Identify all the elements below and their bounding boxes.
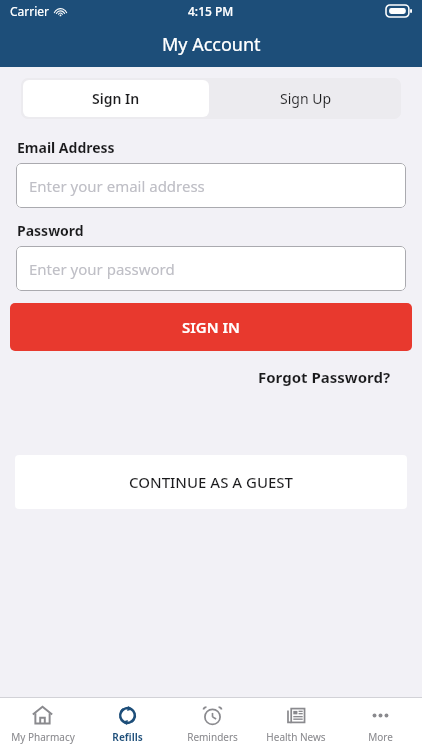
button[interactable]: CONTINUE AS A GUEST [15,455,407,509]
staticText: CONTINUE AS A GUEST [129,472,294,492]
button[interactable]: Enter your password [16,246,406,291]
staticText: 4:15 PM [188,3,234,19]
staticText: My Account [162,32,261,57]
button[interactable]: Forgot Password? [258,367,391,387]
button[interactable]: Sign In [23,80,209,117]
staticText: Enter your password [29,259,175,279]
staticText: More [368,730,393,744]
button[interactable]: Sign Up [211,78,401,119]
staticText: Health News [266,730,326,744]
button[interactable]: More [338,698,422,750]
button[interactable]: Reminders [170,698,254,750]
staticText: Email Address [17,138,115,157]
button[interactable]: Health News [254,698,338,750]
staticText: Refills [112,730,143,744]
staticText: Enter your email address [29,176,205,196]
staticText: Password [17,221,84,240]
button[interactable]: My Pharmacy [0,698,85,750]
staticText: My Pharmacy [11,730,75,744]
staticText: Sign In [92,89,140,108]
button[interactable]: Enter your email address [16,163,406,208]
staticText: Sign Up [280,89,332,108]
button[interactable]: Refills [85,698,170,750]
staticText: Carrier [10,3,50,19]
button[interactable]: SIGN IN [10,303,412,351]
staticText: SIGN IN [182,317,240,337]
staticText: Reminders [187,730,238,744]
